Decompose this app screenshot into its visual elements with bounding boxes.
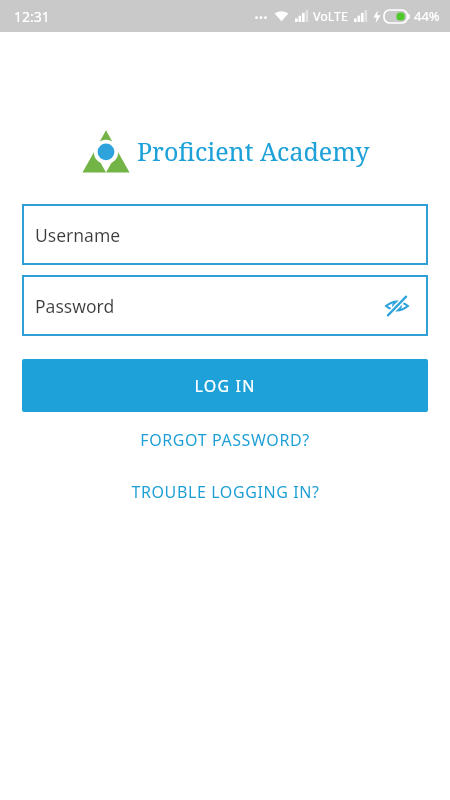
staticText: 44% [414,7,440,25]
button[interactable]: FORGOT PASSWORD? [0,423,450,457]
staticText: 12:31 [14,7,50,26]
button[interactable]: Show password [382,291,412,321]
button[interactable]: Username [22,204,428,265]
staticText: TROUBLE LOGGING IN? [131,481,320,503]
staticText: Password [35,294,115,318]
button[interactable]: TROUBLE LOGGING IN? [0,475,450,509]
staticText: LOG IN [194,375,256,397]
staticText: FORGOT PASSWORD? [140,429,310,451]
staticText: Proficient Academy [137,134,370,168]
button[interactable]: Password [22,275,428,336]
staticText: VoLTE [313,8,349,25]
button[interactable]: LOG IN [22,359,428,412]
staticText: Username [35,223,121,247]
